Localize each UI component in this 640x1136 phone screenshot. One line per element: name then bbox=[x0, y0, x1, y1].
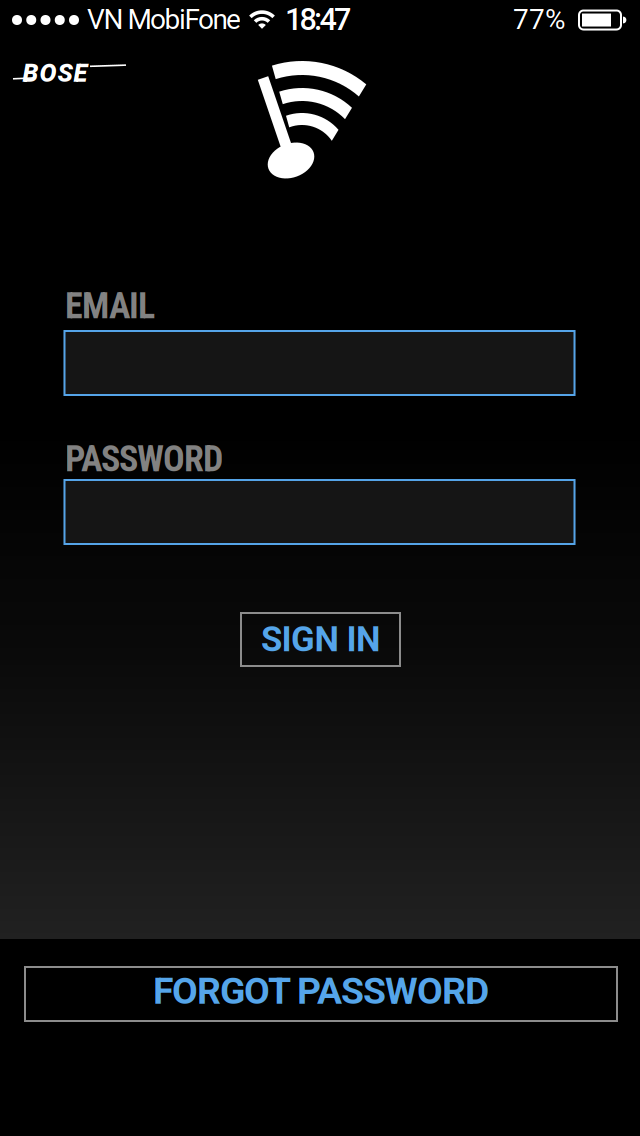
staticText: PASSWORD bbox=[65, 438, 223, 480]
staticText: 18:47 bbox=[285, 1, 351, 37]
staticText: SIGN IN bbox=[261, 619, 380, 660]
staticText: FORGOT PASSWORD bbox=[153, 969, 489, 1013]
button[interactable]: FORGOT PASSWORD bbox=[24, 966, 618, 1022]
staticText: EMAIL bbox=[65, 285, 155, 327]
button[interactable]: Password bbox=[63, 479, 575, 545]
staticText: BOSE bbox=[22, 58, 87, 88]
staticText: VN MobiFone bbox=[87, 3, 241, 36]
staticText: 77% bbox=[513, 3, 566, 36]
button[interactable]: SIGN IN bbox=[240, 612, 401, 667]
button[interactable]: Email bbox=[63, 330, 575, 396]
